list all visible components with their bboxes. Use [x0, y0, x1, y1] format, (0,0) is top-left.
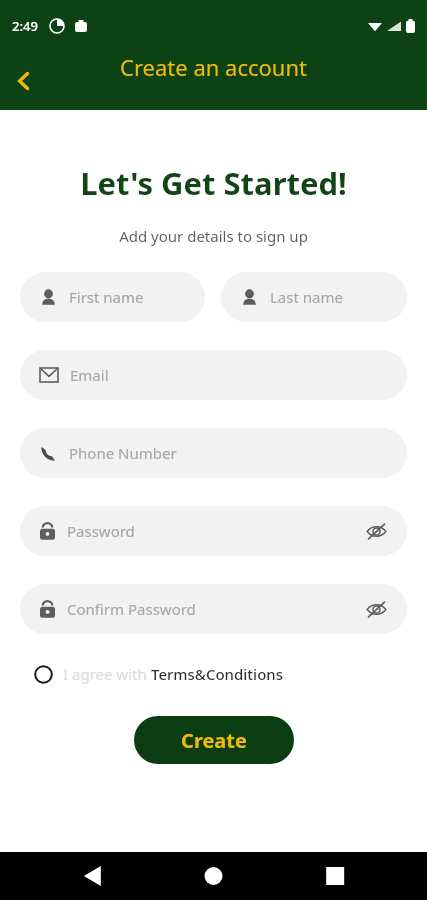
staticText: Add your details to sign up	[0, 226, 427, 246]
button[interactable]: First name	[20, 272, 205, 322]
button[interactable]: Confirm Password	[20, 584, 407, 634]
staticText: Confirm Password	[67, 599, 361, 619]
staticText: Create an account	[0, 52, 427, 82]
staticText: Last name	[270, 287, 391, 307]
staticText: Let's Get Started!	[0, 162, 427, 204]
staticText: Password	[67, 521, 361, 541]
staticText: Email	[70, 365, 391, 385]
staticText: Create	[181, 727, 247, 754]
button[interactable]: I agree with	[34, 664, 393, 684]
staticText: Phone Number	[69, 443, 391, 463]
button[interactable]: Toggle password visibility	[361, 594, 391, 624]
button[interactable]: Phone Number	[20, 428, 407, 478]
button[interactable]: Toggle password visibility	[361, 516, 391, 546]
button[interactable]: Last name	[221, 272, 407, 322]
staticText: Terms&Conditions	[151, 664, 283, 684]
button[interactable]: Email	[20, 350, 407, 400]
staticText: First name	[69, 287, 189, 307]
staticText: 2:49	[12, 17, 38, 35]
staticText: I agree with	[63, 664, 151, 684]
button[interactable]: Password	[20, 506, 407, 556]
button[interactable]: Back	[0, 57, 48, 105]
button[interactable]: Create	[134, 716, 294, 764]
